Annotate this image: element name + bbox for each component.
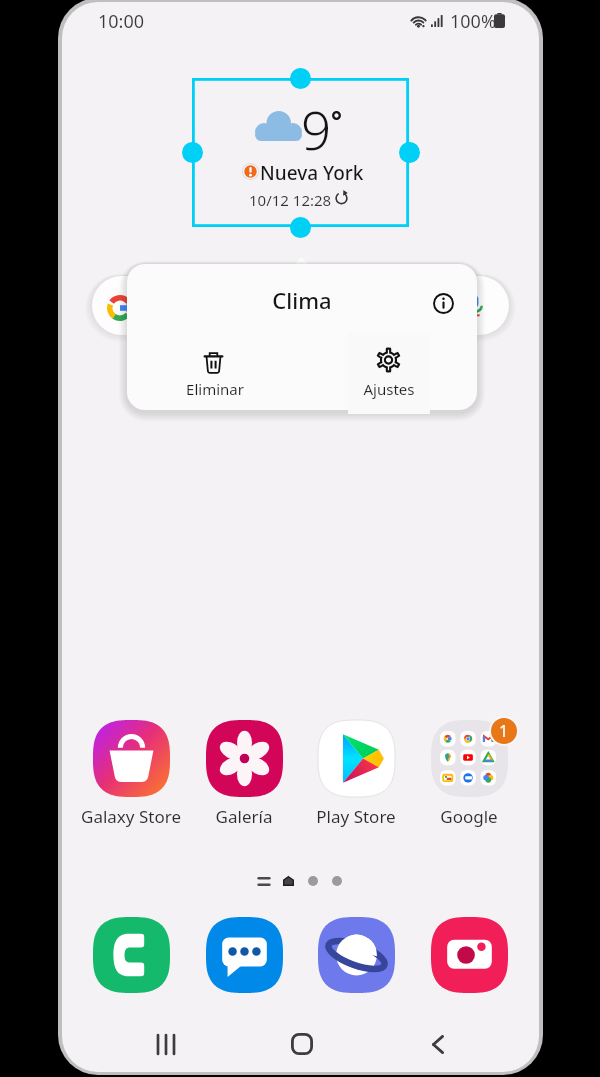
staticText: 1 xyxy=(499,720,509,742)
button[interactable]: Galería xyxy=(188,715,300,827)
staticText: 10:00 xyxy=(98,9,145,34)
staticText: Clima xyxy=(127,285,477,315)
staticText: 100% xyxy=(450,9,496,34)
button[interactable]: Mensajes xyxy=(194,907,294,1003)
staticText: Google xyxy=(413,805,525,828)
button[interactable]: Información del widget xyxy=(427,287,460,320)
button[interactable]: Google xyxy=(413,715,525,827)
staticText: Ajustes xyxy=(348,379,430,399)
staticText: Galería xyxy=(188,805,300,828)
button[interactable]: Página 2 xyxy=(300,868,325,893)
button[interactable]: Widget Clima xyxy=(192,78,409,227)
button[interactable]: Resize xyxy=(290,217,311,238)
button[interactable]: Aplicaciones recientes xyxy=(134,1016,198,1072)
button[interactable]: Ajustes xyxy=(348,333,430,414)
button[interactable]: Inicio xyxy=(276,869,300,893)
button[interactable]: Atrás xyxy=(406,1016,470,1072)
staticText: Galaxy Store xyxy=(75,805,187,828)
staticText: Nueva York xyxy=(260,160,364,186)
button[interactable]: Resize xyxy=(290,68,311,89)
button[interactable]: Buscar con Google xyxy=(92,276,509,335)
button[interactable]: Página de widgets xyxy=(252,869,275,893)
button[interactable]: Inicio xyxy=(270,1016,334,1072)
staticText: 9 xyxy=(301,93,332,165)
button[interactable]: Cámara xyxy=(419,907,519,1003)
staticText: 10/12 12:28 xyxy=(249,190,332,210)
button[interactable]: Internet xyxy=(306,907,406,1003)
button[interactable]: Galaxy Store xyxy=(75,715,187,827)
button[interactable]: Play Store xyxy=(300,715,412,827)
button[interactable]: Resize xyxy=(399,142,420,163)
button[interactable]: Resize xyxy=(182,142,203,163)
staticText: Eliminar xyxy=(171,379,259,399)
button[interactable]: Eliminar xyxy=(171,342,259,410)
button[interactable]: Página 3 xyxy=(324,868,349,893)
button[interactable]: Teléfono xyxy=(81,907,181,1003)
staticText: Play Store xyxy=(300,805,412,828)
